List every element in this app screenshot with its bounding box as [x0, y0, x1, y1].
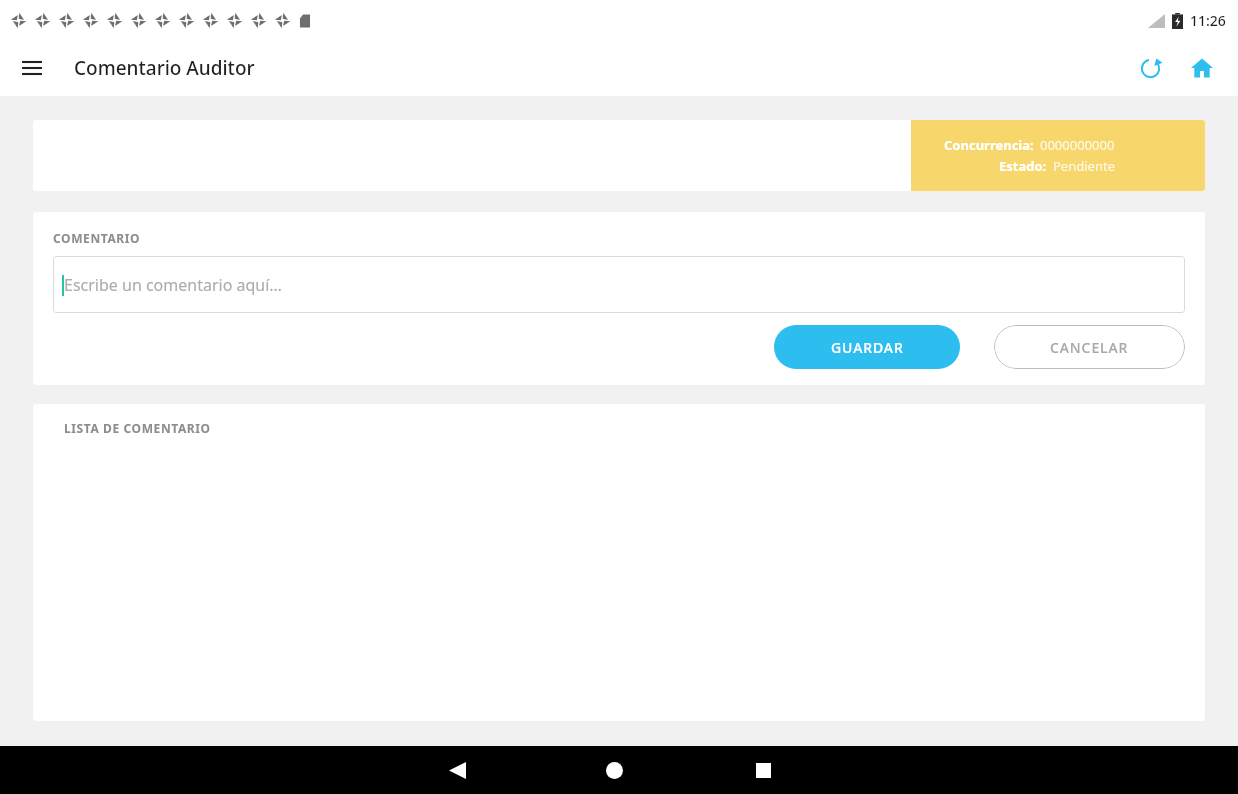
- staticText: 11:26: [1190, 11, 1226, 30]
- button[interactable]: Home: [1178, 44, 1226, 92]
- staticText: CANCELAR: [1050, 338, 1129, 357]
- staticText: Concurrencia:: [944, 136, 1034, 154]
- staticText: 0000000000: [1040, 136, 1115, 154]
- button[interactable]: CANCELAR: [994, 325, 1185, 369]
- button[interactable]: Home: [592, 748, 636, 792]
- button[interactable]: Escribe un comentario aquí…: [53, 256, 1185, 313]
- button[interactable]: Refresh: [1126, 44, 1174, 92]
- button[interactable]: Recent apps: [741, 748, 785, 792]
- staticText: Comentario Auditor: [74, 55, 255, 81]
- staticText: COMENTARIO: [53, 230, 141, 246]
- staticText: LISTA DE COMENTARIO: [64, 420, 211, 436]
- button[interactable]: Back: [435, 748, 479, 792]
- staticText: Estado:: [999, 157, 1047, 175]
- staticText: Escribe un comentario aquí…: [64, 274, 282, 296]
- button[interactable]: GUARDAR: [774, 325, 960, 369]
- staticText: GUARDAR: [831, 338, 904, 357]
- staticText: Pendiente: [1053, 157, 1115, 175]
- button[interactable]: Open navigation menu: [12, 48, 52, 88]
